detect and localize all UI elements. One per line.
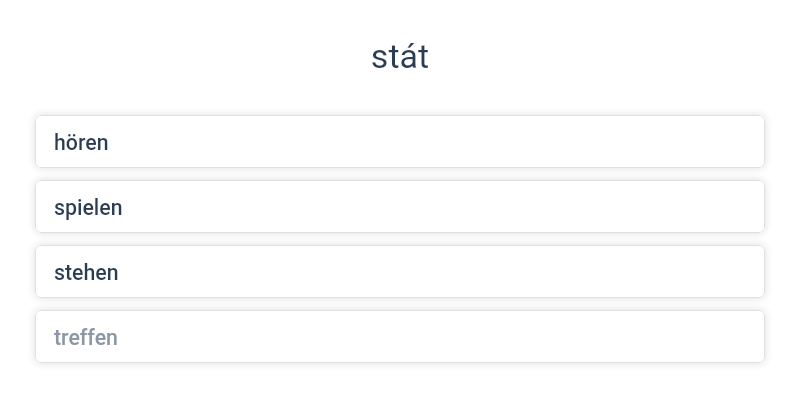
staticText: stehen: [54, 260, 119, 285]
staticText: treffen: [54, 325, 118, 350]
staticText: hören: [54, 130, 109, 155]
button[interactable]: spielen: [35, 180, 765, 233]
button[interactable]: treffen: [35, 310, 765, 363]
staticText: spielen: [54, 195, 123, 220]
staticText: stát: [0, 36, 800, 76]
button[interactable]: hören: [35, 115, 765, 168]
button[interactable]: stehen: [35, 245, 765, 298]
